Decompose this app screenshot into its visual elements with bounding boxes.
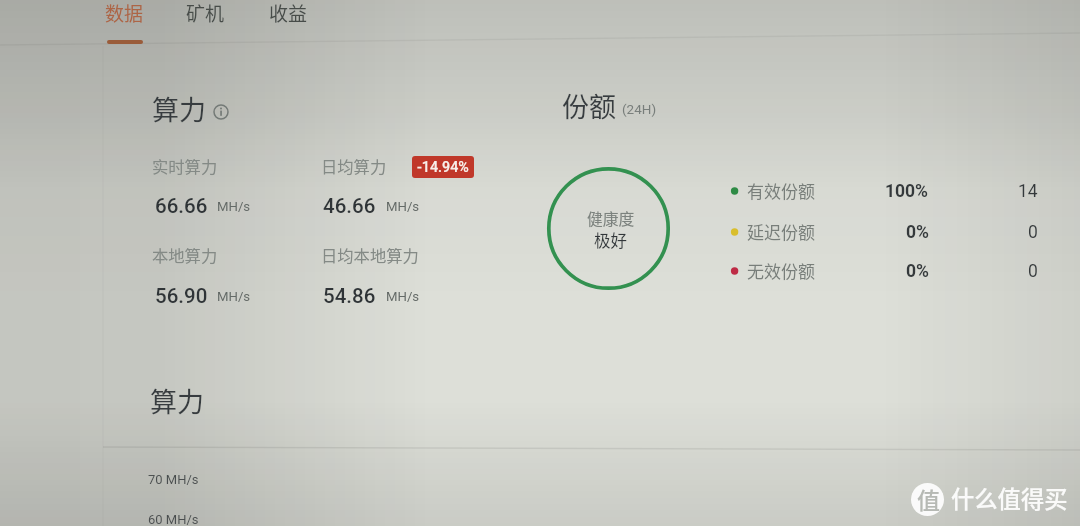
- staticText: 极好: [594, 228, 627, 252]
- staticText: 14: [1018, 181, 1038, 202]
- staticText: 60 MH/s: [148, 512, 199, 526]
- staticText: 值: [917, 482, 940, 515]
- staticText: 54.86: [323, 284, 376, 308]
- staticText: 日均算力: [321, 154, 387, 178]
- staticText: 0: [1028, 261, 1038, 282]
- staticText: 矿机: [186, 0, 225, 27]
- button[interactable]: 矿机: [177, 0, 239, 44]
- staticText: MH/s: [386, 289, 420, 304]
- staticText: -14.94%: [417, 159, 469, 176]
- staticText: 70 MH/s: [148, 472, 199, 487]
- button[interactable]: 延迟份额: [725, 217, 1045, 247]
- button[interactable]: -14.94%: [412, 156, 474, 178]
- staticText: MH/s: [386, 199, 420, 214]
- staticText: 46.66: [323, 194, 376, 218]
- button[interactable]: 收益: [260, 0, 322, 44]
- staticText: 算力: [150, 381, 204, 420]
- staticText: 0%: [906, 222, 929, 243]
- staticText: 100%: [885, 181, 929, 202]
- button[interactable]: 有效份额: [725, 176, 1045, 206]
- staticText: MH/s: [217, 289, 251, 304]
- staticText: 66.66: [155, 194, 208, 218]
- staticText: 数据: [105, 0, 144, 27]
- staticText: 0%: [906, 261, 929, 282]
- staticText: (24H): [622, 101, 657, 117]
- staticText: 实时算力: [152, 154, 218, 178]
- staticText: 延迟份额: [747, 219, 815, 244]
- button[interactable]: 数据: [96, 0, 158, 44]
- button[interactable]: 无效份额: [725, 256, 1045, 286]
- button[interactable]: Hashrate info: [213, 104, 229, 120]
- staticText: MH/s: [217, 199, 251, 214]
- staticText: 无效份额: [747, 258, 815, 283]
- staticText: 份额: [562, 86, 616, 125]
- staticText: 有效份额: [747, 178, 815, 203]
- staticText: 本地算力: [152, 243, 218, 267]
- staticText: 收益: [269, 0, 308, 27]
- staticText: 56.90: [155, 284, 208, 308]
- staticText: 日均本地算力: [321, 243, 419, 267]
- staticText: 0: [1028, 222, 1038, 243]
- staticText: 算力: [152, 89, 206, 128]
- staticText: 什么值得买: [951, 481, 1068, 515]
- staticText: 健康度: [587, 207, 635, 230]
